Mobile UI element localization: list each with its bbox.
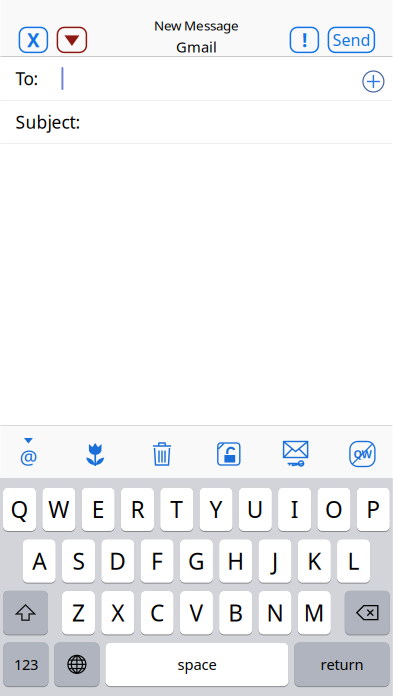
button[interactable]: D [101, 539, 134, 584]
staticText: R [130, 494, 144, 524]
button[interactable]: O [317, 487, 350, 532]
staticText: P [366, 494, 380, 524]
staticText: S [72, 546, 84, 576]
button[interactable]: C [141, 591, 174, 635]
button[interactable]: Delete draft [147, 439, 177, 469]
staticText: 123 [14, 655, 38, 674]
staticText: G [188, 546, 205, 576]
button[interactable]: A [23, 539, 56, 584]
button[interactable]: Q [3, 487, 36, 532]
button[interactable]: space [105, 643, 288, 687]
button[interactable]: return [294, 643, 389, 687]
button[interactable]: W [42, 487, 75, 532]
staticText: Y [210, 494, 223, 524]
staticText: Gmail [176, 37, 217, 57]
button[interactable]: Send [328, 27, 374, 52]
staticText: C [150, 598, 164, 628]
button[interactable]: E [82, 487, 115, 532]
staticText: L [348, 546, 360, 576]
button[interactable]: Next keyboard [54, 643, 99, 687]
button[interactable]: T [160, 487, 193, 532]
button[interactable]: N [258, 591, 292, 635]
staticText: New Message [154, 16, 239, 34]
button[interactable]: Mark important [290, 27, 318, 52]
button[interactable]: L [337, 539, 370, 584]
button[interactable]: F [141, 539, 174, 584]
staticText: To: [15, 67, 38, 90]
staticText: return [320, 655, 363, 674]
button[interactable]: Encrypt mail [281, 439, 311, 469]
staticText: ! [302, 27, 307, 52]
staticText: U [247, 494, 264, 524]
staticText: K [307, 546, 321, 576]
staticText: H [227, 546, 244, 576]
staticText: QW [353, 447, 371, 461]
staticText: J [272, 546, 278, 576]
button[interactable]: Lock screen [214, 439, 244, 469]
staticText: W [48, 494, 69, 524]
staticText: Z [72, 598, 85, 628]
staticText: E [92, 494, 105, 524]
button[interactable]: U [239, 487, 272, 532]
button[interactable]: I [278, 487, 311, 532]
staticText: N [266, 598, 283, 628]
staticText: T [170, 494, 183, 524]
staticText: D [109, 546, 126, 576]
staticText: O [325, 494, 343, 524]
button[interactable]: J [258, 539, 292, 584]
button[interactable]: Add recipient [358, 63, 388, 93]
staticText: A [32, 546, 46, 576]
staticText: V [189, 598, 203, 628]
staticText: @ [19, 443, 37, 470]
staticText: space [177, 655, 216, 674]
staticText: X [27, 27, 40, 52]
staticText: Send [332, 29, 370, 50]
staticText: M [304, 598, 325, 628]
button[interactable]: Delete [345, 591, 390, 635]
button[interactable]: Y [199, 487, 233, 532]
button[interactable]: Insert address [13, 439, 43, 469]
button[interactable]: P [357, 487, 390, 532]
staticText: F [151, 546, 163, 576]
button[interactable]: Insert decoration [80, 439, 110, 469]
button[interactable]: G [180, 539, 213, 584]
button[interactable]: S [62, 539, 95, 584]
button[interactable]: Z [62, 591, 95, 635]
button[interactable]: K [298, 539, 331, 584]
staticText: X [111, 598, 124, 628]
button[interactable]: M [298, 591, 331, 635]
button[interactable]: 123 [3, 643, 48, 687]
button[interactable]: Shift [3, 591, 48, 635]
button[interactable]: H [219, 539, 252, 584]
staticText: B [228, 598, 243, 628]
staticText: Subject: [15, 110, 80, 133]
staticText: I [291, 494, 299, 524]
button[interactable]: V [180, 591, 213, 635]
staticText: Q [11, 494, 29, 524]
button[interactable]: More options [57, 27, 86, 52]
button[interactable]: X [101, 591, 134, 635]
button[interactable]: Close [19, 27, 47, 52]
button[interactable]: B [219, 591, 252, 635]
button[interactable]: Hide keyboard [347, 439, 377, 469]
button[interactable]: R [121, 487, 154, 532]
